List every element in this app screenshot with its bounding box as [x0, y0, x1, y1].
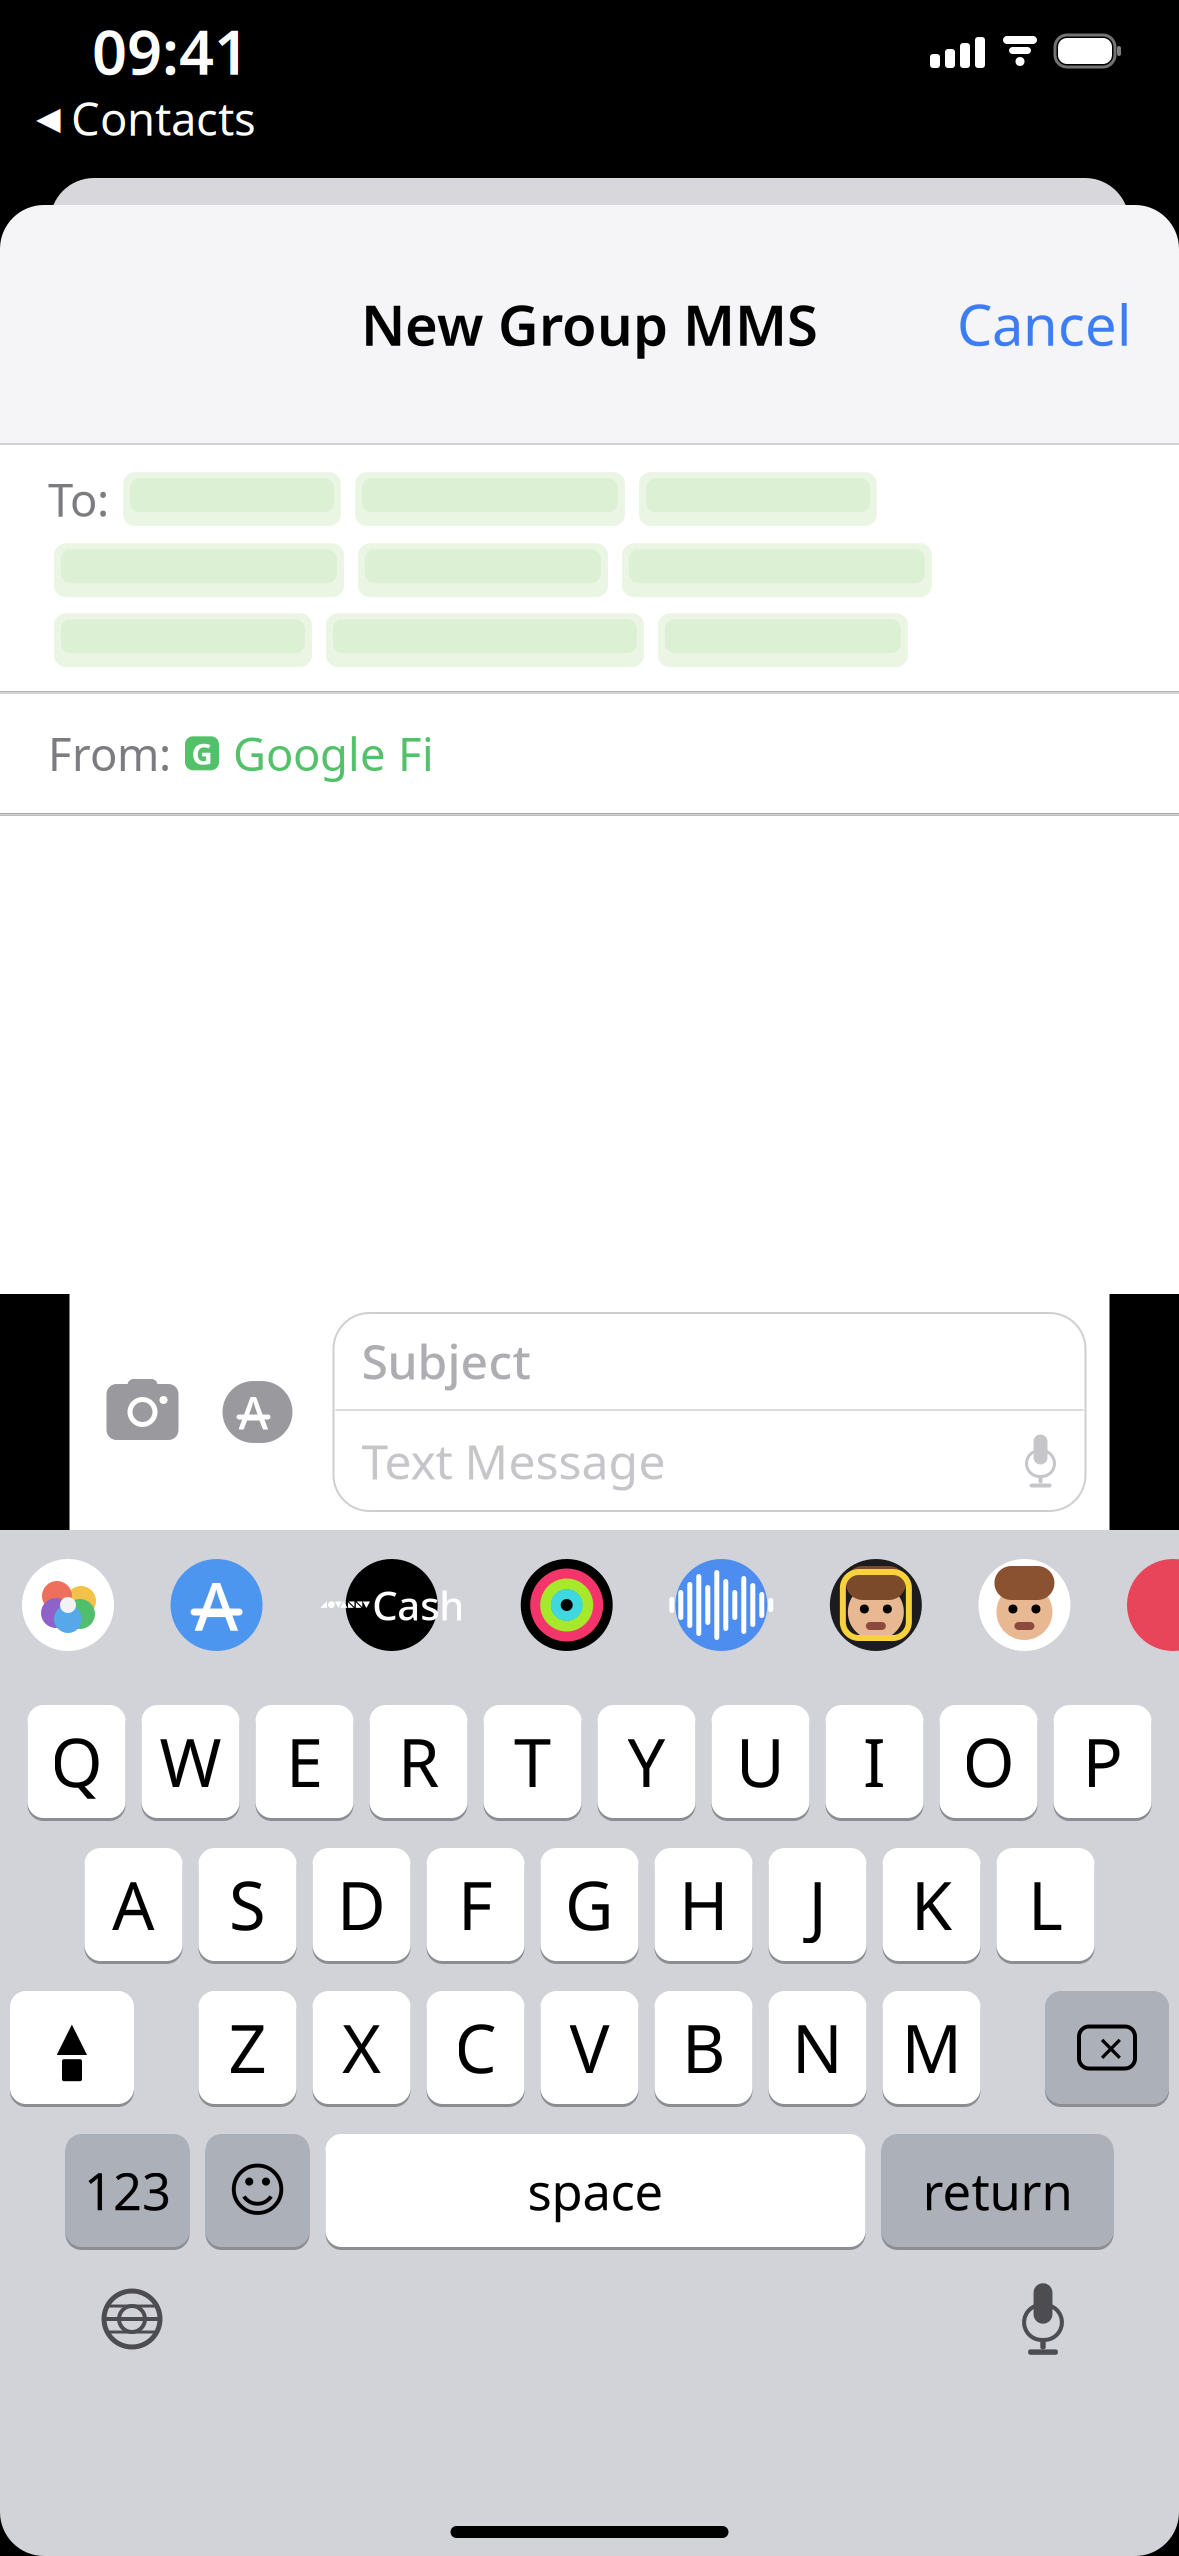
- staticText: Text Message: [361, 1429, 665, 1493]
- staticText: ×: [1098, 2017, 1124, 2078]
- staticText: M: [901, 2003, 961, 2092]
- staticText: W: [159, 1717, 221, 1806]
- button[interactable]: E: [255, 1702, 353, 1821]
- button[interactable]: Memoji: [830, 1559, 922, 1651]
- button[interactable]: R: [369, 1702, 467, 1821]
- staticText: 09:41: [92, 10, 249, 92]
- staticText: A: [195, 1561, 239, 1649]
- button[interactable]: O: [939, 1702, 1037, 1821]
- staticText: G: [565, 1860, 614, 1949]
- button[interactable]: Audio Message: [669, 1559, 773, 1651]
- staticText: H: [679, 1860, 728, 1949]
- staticText: A: [238, 1382, 268, 1442]
- staticText: T: [514, 1717, 551, 1806]
- button[interactable]: F: [426, 1845, 524, 1964]
- staticText: A: [112, 1860, 155, 1949]
- button[interactable]: App Store: [171, 1559, 263, 1651]
- button[interactable]: K: [882, 1845, 980, 1964]
- button[interactable]: J: [768, 1845, 866, 1964]
- button[interactable]: Camera: [105, 1375, 179, 1449]
- button[interactable]: U: [711, 1702, 809, 1821]
- staticText: ◀: [36, 100, 61, 136]
- button[interactable]: B: [654, 1988, 752, 2107]
- button[interactable]: T: [483, 1702, 581, 1821]
- staticText: V: [569, 2003, 609, 2092]
- button[interactable]: L: [996, 1845, 1094, 1964]
- staticText: X: [342, 2003, 381, 2092]
- staticText: U: [736, 1717, 785, 1806]
- staticText: New Group MMS: [361, 287, 818, 361]
- staticText: L: [1028, 1860, 1063, 1949]
- staticText: Cancel: [957, 287, 1131, 361]
- button[interactable]: From:: [0, 693, 1179, 813]
- button[interactable]: S: [198, 1845, 296, 1964]
- staticText: : [319, 1581, 370, 1629]
- staticText: Z: [228, 2003, 266, 2092]
- button[interactable]: X: [312, 1988, 410, 2107]
- staticText: Y: [627, 1717, 665, 1806]
- button[interactable]: Shift: [10, 1988, 134, 2107]
- button[interactable]: Photos: [22, 1559, 114, 1651]
- button[interactable]: space: [325, 2131, 865, 2250]
- button[interactable]: ☺: [205, 2131, 309, 2250]
- button[interactable]: Next keyboard: [92, 2279, 172, 2359]
- staticText: G: [191, 734, 212, 773]
- button[interactable]: Cancel: [933, 273, 1155, 375]
- staticText: C: [454, 2003, 496, 2092]
- button[interactable]: W: [141, 1702, 239, 1821]
- button[interactable]: A: [84, 1845, 182, 1964]
- staticText: N: [792, 2003, 843, 2092]
- staticText: O: [962, 1717, 1014, 1806]
- button[interactable]: Fitness: [521, 1559, 613, 1651]
- button[interactable]: Memoji Stickers: [978, 1559, 1070, 1651]
- staticText: P: [1082, 1717, 1122, 1806]
- staticText: ☺: [227, 2157, 288, 2224]
- button[interactable]: Delete: [1045, 1988, 1169, 2107]
- button[interactable]: G: [540, 1845, 638, 1964]
- staticText: ▲: [56, 2014, 87, 2059]
- staticText: B: [682, 2003, 725, 2092]
- button[interactable]: I: [825, 1702, 923, 1821]
- button[interactable]: Q: [27, 1702, 125, 1821]
- staticText: Subject: [361, 1329, 530, 1393]
- button[interactable]: 123: [65, 2131, 189, 2250]
- button[interactable]: C: [426, 1988, 524, 2107]
- button[interactable]: ◀: [0, 84, 256, 152]
- staticText: Q: [50, 1717, 102, 1806]
- button[interactable]: D: [312, 1845, 410, 1964]
- button[interactable]: Apps: [211, 1375, 295, 1449]
- staticText: S: [229, 1860, 266, 1949]
- button[interactable]: V: [540, 1988, 638, 2107]
- staticText: J: [808, 1860, 826, 1949]
- staticText: From:: [48, 723, 171, 783]
- button[interactable]: P: [1053, 1702, 1151, 1821]
- staticText: return: [922, 2157, 1072, 2224]
- button[interactable]: N: [768, 1988, 866, 2107]
- button[interactable]: Z: [198, 1988, 296, 2107]
- button[interactable]: H: [654, 1845, 752, 1964]
- staticText: To:: [48, 469, 109, 529]
- staticText: 123: [84, 2157, 171, 2224]
- button[interactable]: Dictation: [1003, 2276, 1083, 2362]
- button[interactable]: Y: [597, 1702, 695, 1821]
- staticText: Contacts: [71, 88, 256, 148]
- staticText: I: [863, 1717, 886, 1806]
- staticText: K: [911, 1860, 952, 1949]
- staticText: E: [286, 1717, 323, 1806]
- button[interactable]: M: [882, 1988, 980, 2107]
- staticText: Google Fi: [233, 723, 434, 783]
- button[interactable]: return: [881, 2131, 1113, 2250]
- staticText: D: [337, 1860, 386, 1949]
- staticText: F: [458, 1860, 493, 1949]
- staticText: space: [527, 2157, 663, 2224]
- staticText: R: [398, 1717, 439, 1806]
- staticText: Cash: [372, 1578, 464, 1631]
- button[interactable]: Apple Cash: [319, 1559, 464, 1651]
